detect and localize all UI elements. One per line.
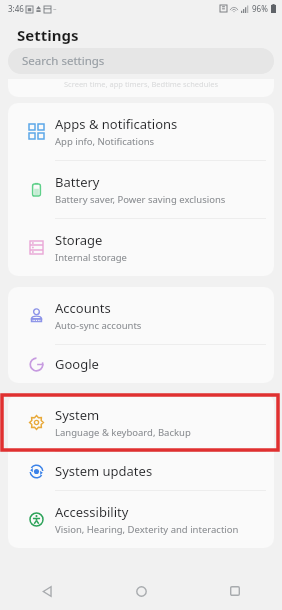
staticText: Auto-sync accounts — [55, 319, 142, 332]
button[interactable]: Accounts — [8, 287, 274, 344]
staticText: Internal storage — [55, 251, 127, 264]
button[interactable]: Accessibility — [8, 491, 274, 548]
staticText: Accessibility — [55, 503, 129, 521]
staticText: Battery saver, Power saving exclusions — [55, 193, 226, 206]
button[interactable]: Screen time, app timers, Bedtime schedul… — [8, 79, 274, 97]
staticText: Language & keyboard, Backup — [55, 426, 191, 439]
button[interactable]: Apps & notifications — [8, 103, 274, 160]
button[interactable]: Home — [94, 572, 188, 610]
button[interactable]: Storage — [8, 219, 274, 276]
staticText: Google — [55, 355, 99, 373]
staticText: Apps & notifications — [55, 115, 178, 133]
button[interactable]: System updates — [8, 452, 274, 490]
button[interactable]: Recent apps — [188, 572, 282, 610]
button[interactable]: Search settings — [8, 48, 274, 74]
staticText: Storage — [55, 231, 103, 249]
staticText: Accounts — [55, 299, 111, 317]
staticText: 96% — [252, 3, 268, 14]
staticText: App info, Notifications — [55, 135, 155, 148]
staticText: – — [53, 4, 57, 14]
button[interactable]: Battery — [8, 161, 274, 218]
button[interactable]: Google — [8, 345, 274, 383]
button[interactable]: Back — [0, 572, 94, 610]
staticText: Battery — [55, 173, 100, 191]
staticText: Screen time, app timers, Bedtime schedul… — [64, 79, 219, 89]
staticText: Vision, Hearing, Dexterity and interacti… — [55, 523, 239, 536]
staticText: Settings — [17, 25, 79, 45]
staticText: System — [55, 406, 100, 424]
staticText: 3:46 — [8, 3, 24, 14]
button[interactable]: System — [8, 394, 274, 451]
staticText: System updates — [55, 462, 153, 480]
staticText: Search settings — [22, 53, 105, 69]
